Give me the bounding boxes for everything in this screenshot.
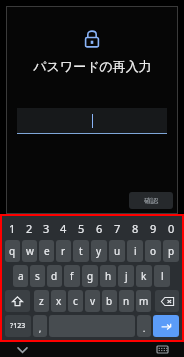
button[interactable]: Enter [153, 315, 179, 337]
button[interactable]: x [51, 290, 66, 312]
staticText: a [18, 269, 24, 283]
staticText: 4 [60, 221, 67, 236]
button[interactable]: n [119, 290, 134, 312]
staticText: i [134, 244, 137, 258]
button[interactable]: 9 [144, 218, 162, 238]
button[interactable] [17, 108, 167, 134]
staticText: x [56, 294, 62, 308]
button[interactable]: d [47, 265, 62, 287]
staticText: r [61, 244, 66, 258]
staticText: e [44, 244, 50, 258]
button[interactable]: 7 [108, 218, 126, 238]
button[interactable]: 2 [21, 218, 38, 238]
staticText: m [139, 294, 149, 308]
button[interactable]: 3 [38, 218, 55, 238]
button[interactable]: g [82, 265, 98, 287]
staticText: 2 [26, 221, 33, 236]
button[interactable]: . [137, 315, 151, 337]
button[interactable]: t [73, 240, 89, 262]
staticText: z [39, 294, 44, 308]
button[interactable]: p [163, 240, 179, 262]
staticText: q [9, 244, 16, 258]
staticText: u [114, 244, 121, 258]
button[interactable]: 確認 [129, 192, 173, 209]
staticText: y [96, 244, 102, 258]
staticText: p [168, 244, 175, 258]
button[interactable]: 8 [126, 218, 144, 238]
staticText: 3 [43, 221, 50, 236]
staticText: , [39, 323, 42, 334]
staticText: 9 [150, 221, 157, 236]
button[interactable]: e [39, 240, 54, 262]
staticText: f [70, 269, 74, 283]
button[interactable]: 1 [4, 218, 21, 238]
button[interactable]: q [5, 240, 20, 262]
staticText: s [35, 269, 40, 283]
staticText: j [125, 269, 128, 283]
staticText: ?123 [10, 321, 26, 331]
staticText: 8 [132, 221, 139, 236]
staticText: o [150, 244, 157, 258]
button[interactable]: c [68, 290, 83, 312]
button[interactable]: r [56, 240, 71, 262]
button[interactable]: u [109, 240, 125, 262]
button[interactable]: o [145, 240, 161, 262]
staticText: . [143, 323, 146, 334]
button[interactable]: j [118, 265, 134, 287]
staticText: b [106, 294, 113, 308]
button[interactable]: s [30, 265, 45, 287]
staticText: 0 [168, 221, 175, 236]
button[interactable]: y [91, 240, 107, 262]
staticText: 1 [9, 221, 16, 236]
button[interactable]: w [22, 240, 37, 262]
staticText: 確認 [144, 196, 158, 205]
staticText: h [105, 269, 112, 283]
button[interactable]: f [64, 265, 80, 287]
staticText: k [141, 269, 147, 283]
button[interactable]: k [136, 265, 152, 287]
button[interactable]: Switch keyboard [154, 342, 170, 357]
button[interactable]: Hide keyboard [14, 342, 30, 357]
button[interactable]: v [85, 290, 100, 312]
button[interactable]: b [102, 290, 117, 312]
button[interactable]: h [100, 265, 116, 287]
button[interactable]: , [33, 315, 47, 337]
staticText: 5 [78, 221, 85, 236]
staticText: 6 [96, 221, 103, 236]
staticText: t [79, 244, 83, 258]
staticText: l [161, 269, 164, 283]
staticText: c [73, 294, 78, 308]
staticText: v [90, 294, 96, 308]
button[interactable]: i [127, 240, 143, 262]
button[interactable]: m [136, 290, 151, 312]
button[interactable]: 5 [72, 218, 90, 238]
button[interactable]: l [154, 265, 170, 287]
button[interactable]: ?123 [5, 315, 31, 337]
button[interactable]: 4 [55, 218, 72, 238]
button[interactable]: z [34, 290, 49, 312]
staticText: w [26, 244, 34, 258]
staticText: d [51, 269, 58, 283]
button[interactable]: Backspace [155, 290, 179, 312]
staticText: n [123, 294, 130, 308]
button[interactable]: Shift [5, 290, 30, 312]
button[interactable]: 6 [90, 218, 108, 238]
staticText: パスワードの再入力 [33, 58, 152, 74]
staticText: g [87, 269, 94, 283]
button[interactable]: a [13, 265, 28, 287]
staticText: 7 [114, 221, 121, 236]
button[interactable]: 0 [162, 218, 180, 238]
